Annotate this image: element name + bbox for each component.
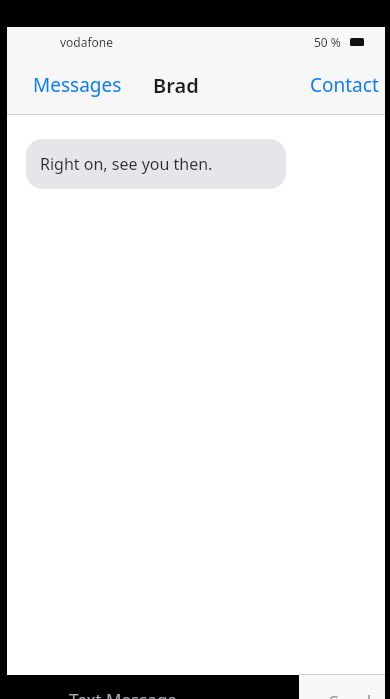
button[interactable]: Messages — [26, 68, 129, 102]
staticText: Send — [329, 690, 372, 699]
staticText: Text Message — [69, 688, 177, 699]
staticText: Contact — [310, 72, 379, 98]
staticText: Messages — [33, 72, 122, 98]
staticText: vodafone — [60, 34, 114, 50]
staticText: Brad — [153, 72, 199, 99]
button[interactable]: Contact — [303, 68, 386, 102]
other: Battery 50 percent — [350, 38, 364, 46]
staticText: Right on, see you then. — [40, 153, 213, 175]
staticText: 50 % — [314, 34, 341, 50]
button[interactable]: Text Message input field — [7, 675, 299, 699]
button[interactable]: Right on, see you then. — [26, 139, 286, 189]
button[interactable]: Send — [299, 675, 385, 699]
